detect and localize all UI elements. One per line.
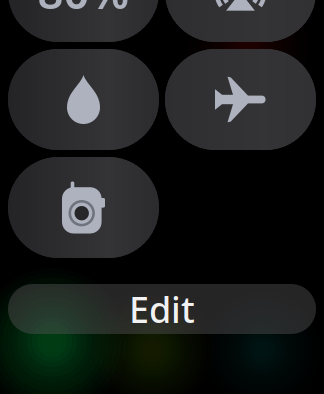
staticText: 80% <box>37 0 129 22</box>
button[interactable]: Edit <box>8 284 316 334</box>
button[interactable]: Wi-Fi <box>165 0 316 42</box>
button[interactable]: 80% <box>8 0 159 42</box>
staticText: Edit <box>129 285 195 333</box>
button[interactable]: Airplane Mode <box>165 49 316 150</box>
button[interactable]: Walkie-Talkie <box>8 157 159 258</box>
button[interactable]: Water Lock <box>8 49 159 150</box>
